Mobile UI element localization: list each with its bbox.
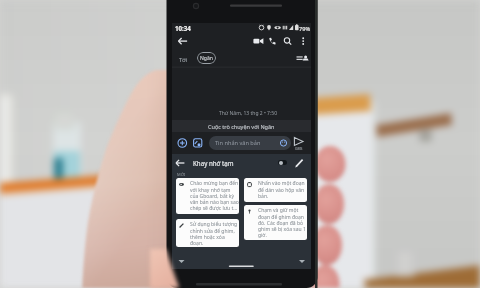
staticText: Chào mừng bạn đến với khay nhớ tạm của G… [190,180,239,211]
staticText: 79% [299,25,311,33]
button[interactable]: Gallery [191,137,205,151]
staticText: Thứ Năm, 13 thg 2 • 7:50 [219,110,278,117]
button[interactable]: Ngân [197,52,216,64]
staticText: Nhấn vào một đoạn để dán vào hộp văn bản… [258,180,307,199]
button[interactable]: Call [264,35,280,51]
staticText: Tới [179,56,188,64]
button[interactable]: Search [280,35,296,51]
staticText: GMS [295,146,303,151]
staticText: Chạm và giữ một đoạn để ghim đoạn đó. Cá… [258,207,307,238]
staticText: Khay nhớ tạm [193,159,234,167]
button[interactable]: Tin nhắn văn bản [209,136,291,150]
staticText: 10:34 [175,24,191,32]
button[interactable]: Back [174,156,188,170]
button[interactable]: Add people [294,52,308,66]
staticText: Cuộc trò chuyện với Ngân [208,123,275,130]
button[interactable]: Back [175,35,191,51]
button[interactable]: Send [291,137,306,152]
staticText: Ngân [200,55,213,62]
staticText: Tin nhắn văn bản [215,139,261,147]
button[interactable]: Chạm và giữ một đoạn để ghim đoạn đó. Cá… [244,205,307,240]
button[interactable]: Sử dụng biểu tượng chỉnh sửa để ghim, th… [176,219,239,247]
button[interactable]: Edit clipboard [292,156,306,170]
button[interactable]: Add attachment [176,137,190,151]
button[interactable]: Nhấn vào một đoạn để dán vào hộp văn bản… [244,178,307,202]
button[interactable]: More options [295,35,309,49]
staticText: Sử dụng biểu tượng chỉnh sửa để ghim, th… [190,221,239,246]
staticText: MỚI [177,172,186,177]
button[interactable]: Chào mừng bạn đến với khay nhớ tạm của G… [176,178,239,214]
button[interactable]: Video call [248,35,264,51]
button[interactable]: Clipboard toggle [278,160,287,165]
